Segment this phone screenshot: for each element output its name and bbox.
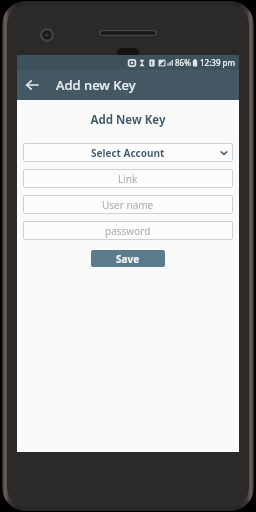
button[interactable]: password — [23, 221, 233, 240]
staticText: 12:39 pm — [200, 57, 236, 68]
staticText: Select Account — [91, 146, 165, 160]
staticText: 86% — [175, 57, 191, 68]
staticText: User name — [102, 198, 154, 212]
button[interactable]: Link — [23, 169, 233, 188]
staticText: Save — [116, 252, 140, 266]
staticText: Add new Key — [56, 76, 136, 94]
staticText: Link — [118, 172, 138, 186]
button[interactable]: Select Account — [23, 143, 233, 162]
staticText: Add New Key — [17, 112, 239, 128]
button[interactable]: Save — [91, 250, 165, 267]
button[interactable]: User name — [23, 195, 233, 214]
staticText: password — [105, 224, 151, 238]
button[interactable]: Back — [17, 70, 47, 100]
